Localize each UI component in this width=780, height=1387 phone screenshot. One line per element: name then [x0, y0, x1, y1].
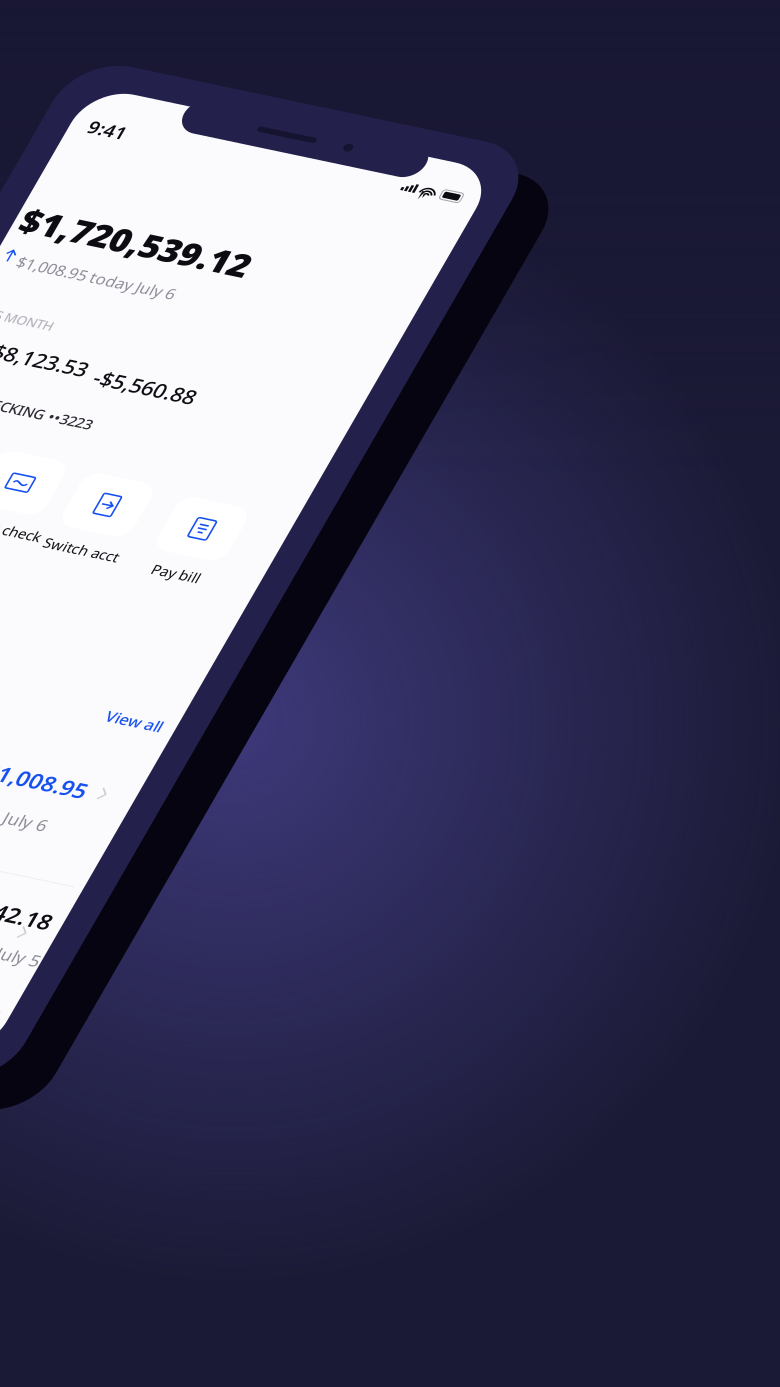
- staticText: $1,008.95 today July 6: [131, 270, 292, 291]
- button[interactable]: Switch acct: [303, 481, 379, 573]
- button[interactable]: +$1,008.95: [357, 796, 473, 827]
- staticText: Deposit check: [202, 550, 298, 569]
- staticText: $1,720,539.12: [113, 212, 345, 259]
- staticText: +$1,008.95: [357, 796, 473, 827]
- staticText: $8,123.53: [156, 363, 252, 392]
- staticText: Switch acct: [303, 554, 379, 573]
- button[interactable]: Deposit check: [202, 477, 298, 569]
- staticText: 9:41: [125, 113, 163, 138]
